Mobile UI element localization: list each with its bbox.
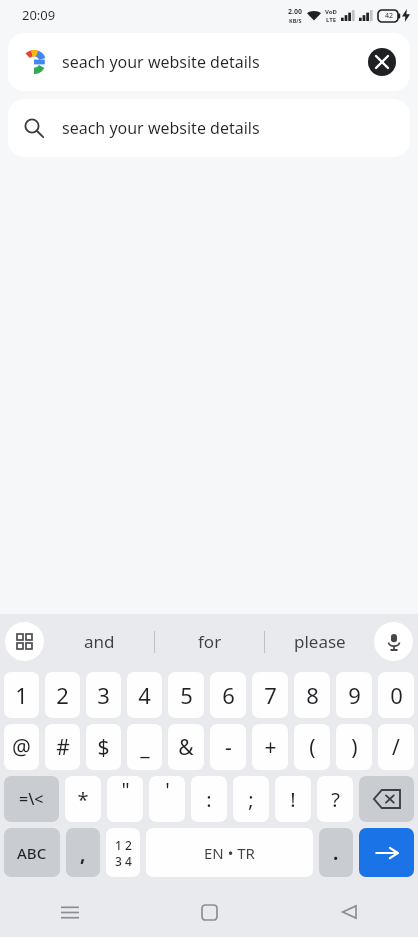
staticText: please [294, 630, 346, 653]
staticText: 8 [306, 680, 319, 710]
staticText: VoD [325, 8, 337, 16]
button[interactable]: and [44, 614, 154, 669]
staticText: 3 [97, 680, 110, 710]
staticText: 3 4 [115, 853, 132, 869]
staticText: * [77, 786, 89, 813]
staticText: 7 [264, 680, 277, 710]
button[interactable]: 5 [168, 672, 204, 718]
button[interactable]: ' [149, 776, 185, 822]
button[interactable]: seach your website details [8, 33, 410, 91]
button[interactable]: 9 [336, 672, 372, 718]
button[interactable]: Voice input [374, 622, 413, 661]
button[interactable]: " [107, 776, 143, 822]
button[interactable]: _ [127, 724, 162, 770]
staticText: EN • TR [204, 843, 255, 863]
staticText: / [392, 733, 400, 762]
staticText: ? [331, 786, 340, 813]
button[interactable]: EN • TR [146, 828, 313, 877]
button[interactable]: ? [317, 776, 353, 822]
staticText: 5 [180, 680, 193, 710]
staticText: 9 [348, 680, 361, 710]
staticText: ! [290, 786, 296, 813]
staticText: 4 [138, 680, 151, 710]
staticText: @ [12, 733, 31, 762]
button[interactable]: for [155, 614, 264, 669]
button[interactable]: please [265, 614, 374, 669]
staticText: for [198, 630, 222, 653]
button[interactable]: Back [279, 887, 418, 937]
button[interactable]: ( [294, 724, 330, 770]
button[interactable]: Clear [368, 48, 396, 76]
staticText: ' [165, 776, 170, 803]
staticText: 6 [222, 680, 235, 710]
button[interactable]: 6 [210, 672, 246, 718]
button[interactable]: 7 [252, 672, 288, 718]
staticText: ; [248, 786, 254, 813]
staticText: " [121, 776, 130, 803]
button[interactable]: @ [4, 724, 39, 770]
button[interactable]: Enter [359, 828, 414, 877]
staticText: =\< [19, 788, 44, 810]
button[interactable]: - [210, 724, 246, 770]
button[interactable]: 3 [86, 672, 121, 718]
button[interactable]: 2 [45, 672, 80, 718]
button[interactable]: seach your website details [8, 99, 410, 157]
staticText: $ [97, 733, 110, 762]
button[interactable]: : [191, 776, 227, 822]
staticText: 1 [15, 680, 28, 710]
staticText: : [206, 786, 212, 813]
button[interactable]: Keyboard options [5, 622, 44, 661]
button[interactable]: Recents [0, 887, 140, 937]
button[interactable]: 1 [4, 672, 39, 718]
staticText: ( [309, 733, 316, 762]
staticText: 20:09 [22, 6, 56, 24]
button[interactable]: Backspace [359, 776, 414, 822]
button[interactable]: + [252, 724, 288, 770]
button[interactable]: # [45, 724, 80, 770]
button[interactable]: ! [275, 776, 311, 822]
staticText: seach your website details [62, 51, 368, 73]
staticText: # [56, 733, 70, 762]
button[interactable]: 4 [127, 672, 162, 718]
staticText: seach your website details [62, 117, 260, 139]
staticText: 1 2 [115, 837, 132, 853]
staticText: + [264, 733, 277, 762]
staticText: _ [140, 733, 150, 762]
staticText: 42 [385, 11, 394, 21]
button[interactable]: , [66, 828, 100, 877]
staticText: - [225, 733, 232, 762]
button[interactable]: =\< [4, 776, 59, 822]
button[interactable]: ; [233, 776, 269, 822]
button[interactable]: / [378, 724, 414, 770]
staticText: 2.00 [288, 7, 302, 17]
staticText: 0 [390, 680, 403, 710]
button[interactable]: 8 [294, 672, 330, 718]
button[interactable]: . [319, 828, 353, 877]
staticText: , [80, 841, 86, 867]
staticText: and [84, 630, 115, 653]
button[interactable]: $ [86, 724, 121, 770]
staticText: 2 [56, 680, 69, 710]
button[interactable]: & [168, 724, 204, 770]
staticText: ABC [17, 843, 47, 863]
staticText: LTE [326, 16, 337, 24]
button[interactable]: 0 [378, 672, 414, 718]
staticText: & [178, 733, 194, 762]
button[interactable]: Numbers [106, 828, 140, 877]
staticText: . [333, 840, 339, 866]
staticText: KB/S [289, 17, 302, 24]
button[interactable]: ) [336, 724, 372, 770]
button[interactable]: Home [140, 887, 279, 937]
button[interactable]: ABC [4, 828, 60, 877]
button[interactable]: * [65, 776, 101, 822]
staticText: ) [351, 733, 358, 762]
